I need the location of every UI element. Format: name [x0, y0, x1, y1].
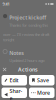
staticText: Save — [37, 77, 49, 84]
staticText: Project kickoff — [9, 14, 46, 21]
staticText: Share — [9, 87, 22, 100]
staticText: over — I'll review the draft tonight — [3, 32, 49, 42]
button[interactable]: Share — [1, 87, 27, 98]
button[interactable]: Close — [3, 67, 7, 71]
button[interactable]: Edit — [1, 75, 27, 85]
staticText: Notes — [9, 49, 24, 56]
staticText: Edit — [9, 77, 18, 84]
staticText: More — [37, 89, 50, 96]
button[interactable]: More — [29, 87, 54, 98]
button[interactable]: Save — [29, 75, 54, 85]
staticText: Actions — [18, 66, 38, 73]
staticText: Thanks for sending this — [9, 22, 48, 28]
staticText: Updated 2 hours ago — [9, 58, 44, 63]
staticText: 9:41 — [2, 1, 9, 7]
